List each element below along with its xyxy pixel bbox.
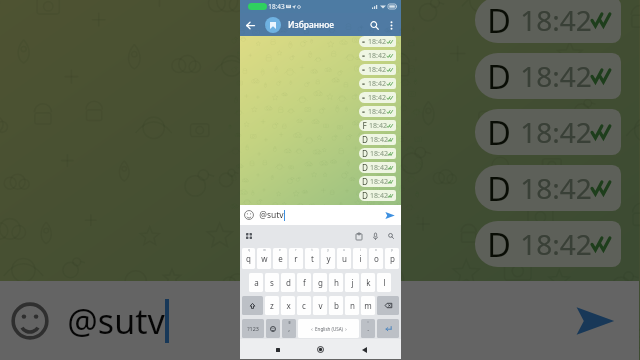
button[interactable]: Send: [571, 297, 619, 345]
button[interactable]: p: [385, 248, 399, 269]
button[interactable]: m: [361, 296, 375, 315]
staticText: ?123: [247, 325, 259, 332]
button[interactable]: D: [475, 109, 621, 155]
button[interactable]: u: [337, 248, 351, 269]
button[interactable]: Back: [358, 343, 371, 356]
button[interactable]: f: [297, 273, 311, 292]
button[interactable]: Symbols: [242, 319, 264, 338]
button[interactable]: D: [475, 53, 621, 99]
staticText: a: [254, 277, 259, 288]
button[interactable]: d: [281, 273, 295, 292]
staticText: D: [362, 148, 368, 159]
staticText: D: [362, 134, 368, 145]
staticText: i: [359, 253, 362, 264]
button[interactable]: w: [257, 248, 271, 269]
button[interactable]: F: [359, 120, 396, 131]
button[interactable]: q: [242, 248, 255, 269]
staticText: p: [390, 253, 395, 264]
staticText: Избранное: [288, 19, 334, 30]
staticText: 18:42: [369, 121, 387, 131]
button[interactable]: Search: [386, 231, 396, 241]
staticText: l: [383, 277, 386, 288]
button[interactable]: Emoji: [266, 319, 280, 338]
staticText: s: [270, 277, 274, 288]
staticText: n: [350, 300, 355, 311]
staticText: 18:43: [268, 2, 285, 11]
staticText: p: [391, 248, 393, 252]
staticText: F: [362, 120, 367, 131]
button[interactable]: Backspace: [377, 296, 399, 315]
button[interactable]: Comma: [282, 319, 296, 338]
button[interactable]: 18:42: [359, 92, 396, 103]
button[interactable]: D: [475, 165, 621, 211]
staticText: 18:42: [370, 149, 388, 159]
button[interactable]: Space: [298, 319, 359, 338]
button[interactable]: Enter: [377, 319, 399, 338]
staticText: t: [311, 248, 313, 252]
staticText: D: [362, 176, 368, 187]
button[interactable]: 18:42: [359, 78, 396, 89]
staticText: m: [364, 300, 372, 311]
button[interactable]: h: [329, 273, 343, 292]
button[interactable]: b: [329, 296, 343, 315]
staticText: k: [366, 277, 371, 288]
button[interactable]: i: [353, 248, 367, 269]
staticText: q: [248, 248, 250, 252]
staticText: b: [334, 300, 339, 311]
button[interactable]: t: [305, 248, 319, 269]
staticText: 18:42: [368, 51, 386, 61]
staticText: D: [487, 54, 511, 99]
staticText: f: [303, 277, 306, 288]
button[interactable]: 18:42: [359, 64, 396, 75]
button[interactable]: D: [359, 162, 396, 173]
button[interactable]: D: [359, 176, 396, 187]
staticText: D: [487, 166, 511, 211]
button[interactable]: s: [265, 273, 279, 292]
button[interactable]: Home: [314, 343, 327, 356]
button[interactable]: 18:42: [359, 50, 396, 61]
staticText: z: [270, 300, 274, 311]
button[interactable]: D: [475, 0, 621, 43]
button[interactable]: r: [289, 248, 303, 269]
button[interactable]: D: [359, 134, 396, 145]
staticText: 18:42: [520, 57, 592, 95]
button[interactable]: Clipboard: [354, 231, 364, 241]
button[interactable]: Search: [365, 16, 383, 34]
button[interactable]: x: [281, 296, 295, 315]
staticText: D: [487, 222, 511, 267]
button[interactable]: D: [359, 190, 396, 201]
button[interactable]: j: [345, 273, 359, 292]
button[interactable]: o: [369, 248, 383, 269]
button[interactable]: z: [265, 296, 279, 315]
button[interactable]: n: [345, 296, 359, 315]
button[interactable]: k: [361, 273, 375, 292]
staticText: c: [302, 300, 306, 311]
button[interactable]: Send: [384, 209, 396, 221]
button[interactable]: D: [475, 221, 621, 267]
button[interactable]: v: [313, 296, 327, 315]
button[interactable]: Back: [242, 17, 258, 33]
button[interactable]: Shift: [242, 296, 263, 315]
button[interactable]: 18:42: [359, 106, 396, 117]
button[interactable]: Recents: [271, 343, 284, 356]
button[interactable]: 18:42: [359, 36, 396, 47]
button[interactable]: c: [297, 296, 311, 315]
button[interactable]: e: [273, 248, 287, 269]
staticText: r: [295, 248, 297, 252]
button[interactable]: More options: [383, 17, 399, 33]
staticText: u: [342, 253, 347, 264]
button[interactable]: Saved Messages avatar: [265, 17, 281, 33]
button[interactable]: D: [359, 148, 396, 159]
button[interactable]: Voice input: [370, 231, 380, 241]
button[interactable]: Period: [361, 319, 375, 338]
button[interactable]: a: [249, 273, 263, 292]
staticText: i: [360, 248, 361, 252]
staticText: @sutv: [259, 209, 284, 221]
staticText: o: [374, 253, 379, 264]
button[interactable]: Keyboard modes: [244, 231, 254, 241]
staticText: g: [318, 277, 323, 288]
button[interactable]: g: [313, 273, 327, 292]
button[interactable]: l: [377, 273, 391, 292]
staticText: 18:42: [368, 93, 386, 103]
button[interactable]: y: [321, 248, 335, 269]
